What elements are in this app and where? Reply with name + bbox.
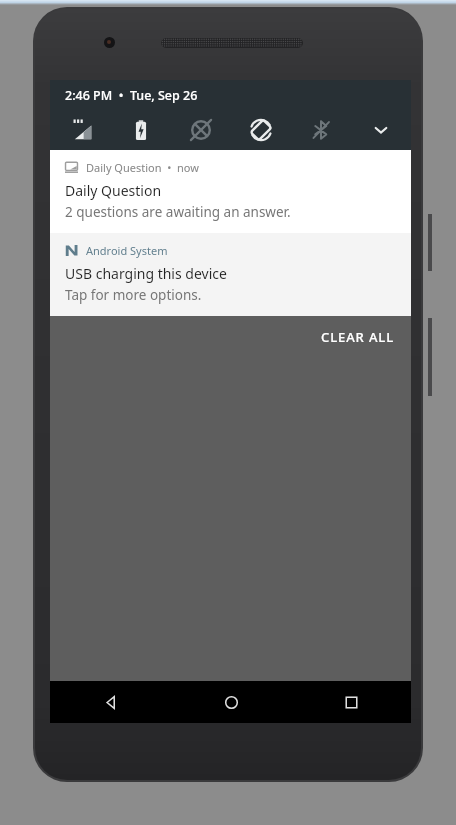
staticText: Daily Question xyxy=(65,181,162,200)
button[interactable]: Daily Question • now xyxy=(50,150,411,233)
button[interactable]: Mobile signal LTE xyxy=(50,110,111,150)
button[interactable]: Auto rotate xyxy=(231,110,291,150)
staticText: 2 questions are awaiting an answer. xyxy=(65,203,291,221)
button[interactable]: Expand quick settings xyxy=(351,110,411,150)
staticText: Tap for more options. xyxy=(65,286,202,304)
button[interactable]: Do not disturb xyxy=(171,110,231,150)
staticText: USB charging this device xyxy=(65,264,227,283)
button[interactable]: CLEAR ALL xyxy=(50,316,411,358)
staticText: Android System xyxy=(86,243,168,258)
button[interactable]: Home xyxy=(171,681,291,723)
button[interactable]: Android System xyxy=(50,233,411,316)
staticText: 2:46 PM • Tue, Sep 26 xyxy=(65,87,198,104)
staticText: CLEAR ALL xyxy=(321,328,395,346)
button[interactable]: Battery charging xyxy=(111,110,171,150)
staticText: Daily Question • now xyxy=(86,160,199,175)
button[interactable]: Recent apps xyxy=(291,681,411,723)
button[interactable]: Bluetooth off xyxy=(291,110,351,150)
button[interactable]: Back xyxy=(50,681,171,723)
